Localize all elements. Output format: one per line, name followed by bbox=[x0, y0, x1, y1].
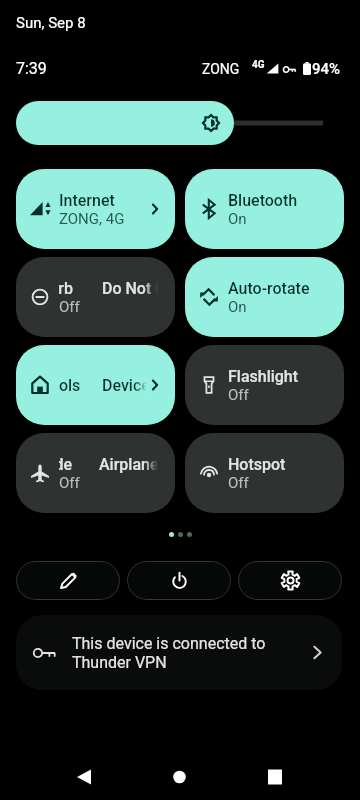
staticText: ZONG bbox=[202, 61, 240, 77]
staticText: Auto-rotate bbox=[228, 279, 310, 298]
staticText: On bbox=[228, 210, 247, 228]
staticText: Off bbox=[228, 474, 249, 492]
button[interactable]: Bluetooth bbox=[185, 169, 344, 249]
button[interactable]: Do Not Disturb bbox=[16, 257, 175, 337]
staticText: Device controls bbox=[102, 376, 147, 395]
staticText: 94% bbox=[312, 60, 341, 78]
staticText: Airplane mode bbox=[99, 455, 158, 474]
button[interactable]: Flashlight bbox=[185, 345, 344, 425]
staticText: Do Not Disturb bbox=[102, 279, 158, 298]
button[interactable]: Auto-rotate bbox=[185, 257, 344, 337]
staticText: Hotspot bbox=[228, 455, 286, 474]
staticText: Airplane mode bbox=[59, 455, 67, 474]
staticText: On bbox=[228, 298, 247, 316]
button[interactable]: This device is connected to bbox=[16, 615, 342, 690]
staticText: Internet bbox=[59, 191, 115, 210]
staticText: Thunder VPN bbox=[72, 653, 167, 672]
button[interactable]: Device controls bbox=[16, 345, 175, 425]
button[interactable]: Airplane mode bbox=[16, 433, 175, 513]
staticText: Sun, Sep 8 bbox=[16, 14, 86, 32]
staticText: 7:39 bbox=[16, 59, 47, 78]
staticText: Off bbox=[59, 298, 80, 316]
button[interactable]: Hotspot bbox=[185, 433, 344, 513]
button[interactable]: Brightness bbox=[16, 101, 234, 145]
staticText: Bluetooth bbox=[228, 191, 298, 210]
staticText: Off bbox=[59, 474, 80, 492]
staticText: This device is connected to bbox=[72, 634, 266, 653]
staticText: Off bbox=[228, 386, 249, 404]
staticText: 4G bbox=[252, 59, 265, 71]
button[interactable]: Settings bbox=[238, 561, 342, 600]
staticText: ZONG, 4G bbox=[59, 210, 125, 228]
staticText: Flashlight bbox=[228, 367, 299, 386]
button[interactable]: Internet bbox=[16, 169, 175, 249]
staticText: Do Not Disturb bbox=[59, 279, 67, 298]
button[interactable]: Power bbox=[127, 561, 231, 600]
button[interactable]: Edit bbox=[16, 561, 120, 600]
